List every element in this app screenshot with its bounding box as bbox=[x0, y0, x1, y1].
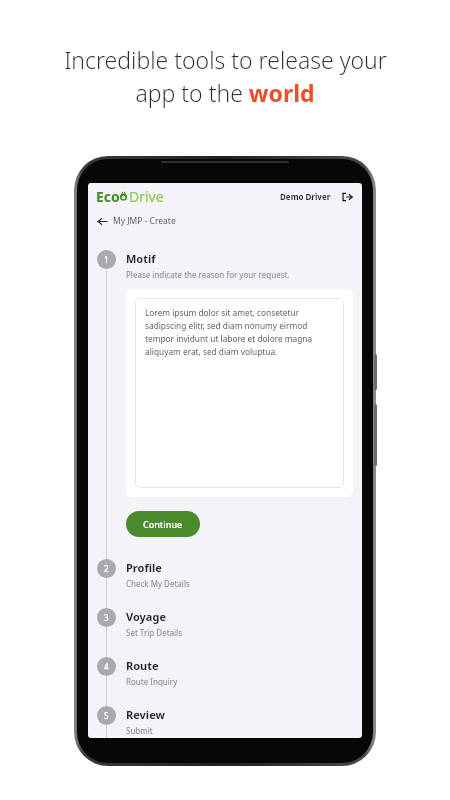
staticText: My JMP - Create bbox=[113, 215, 176, 227]
staticText: Lorem ipsum dolor sit amet, consetetur s… bbox=[145, 307, 334, 358]
staticText: Voyage bbox=[126, 609, 166, 624]
button[interactable]: My JMP - Create bbox=[88, 210, 362, 232]
staticText: Continue bbox=[143, 518, 183, 530]
staticText: Route Inquiry bbox=[126, 676, 178, 687]
staticText: app to the world bbox=[135, 77, 315, 108]
staticText: Incredible tools to release your bbox=[64, 44, 387, 75]
staticText: 2 bbox=[104, 563, 109, 574]
button[interactable]: Lorem ipsum dolor sit amet, consetetur s… bbox=[135, 298, 344, 488]
staticText: Motif bbox=[126, 251, 156, 266]
staticText: Please indicate the reason for your requ… bbox=[126, 269, 290, 280]
staticText: Route bbox=[126, 658, 159, 673]
button[interactable]: Continue bbox=[126, 511, 200, 537]
staticText: Set Trip Details bbox=[126, 627, 182, 638]
staticText: Profile bbox=[126, 560, 162, 575]
staticText: Review bbox=[126, 707, 165, 722]
staticText: 1 bbox=[104, 254, 109, 265]
button[interactable]: Eco bbox=[96, 187, 164, 206]
staticText: Eco bbox=[96, 187, 120, 206]
button[interactable]: 3 bbox=[88, 608, 362, 638]
staticText: Check My Details bbox=[126, 578, 190, 589]
staticText: Drive bbox=[129, 187, 164, 206]
staticText: 3 bbox=[104, 612, 109, 623]
staticText: Demo Driver bbox=[280, 191, 331, 202]
button[interactable]: Log out bbox=[340, 190, 354, 204]
staticText: 5 bbox=[104, 710, 109, 721]
button[interactable]: 2 bbox=[88, 559, 362, 589]
staticText: Submit bbox=[126, 725, 153, 736]
button[interactable]: 4 bbox=[88, 657, 362, 687]
staticText: 4 bbox=[104, 661, 109, 672]
button[interactable]: Demo Driver bbox=[280, 191, 331, 202]
button[interactable]: 5 bbox=[88, 706, 362, 736]
